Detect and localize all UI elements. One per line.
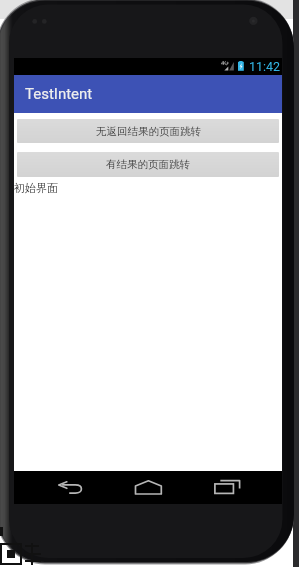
button[interactable]: Recent apps	[184, 471, 274, 504]
staticText: TestIntent	[25, 85, 93, 103]
button[interactable]: 有结果的页面跳转	[17, 152, 279, 177]
button[interactable]: 无返回结果的页面跳转	[17, 119, 279, 143]
staticText: 11:42	[249, 59, 281, 74]
staticText: 有结果的页面跳转	[106, 158, 190, 171]
staticText: 初始界面	[14, 181, 58, 195]
button[interactable]: Home	[108, 471, 188, 504]
button[interactable]: Back	[26, 471, 126, 504]
staticText: 无返回结果的页面跳转	[96, 125, 201, 138]
